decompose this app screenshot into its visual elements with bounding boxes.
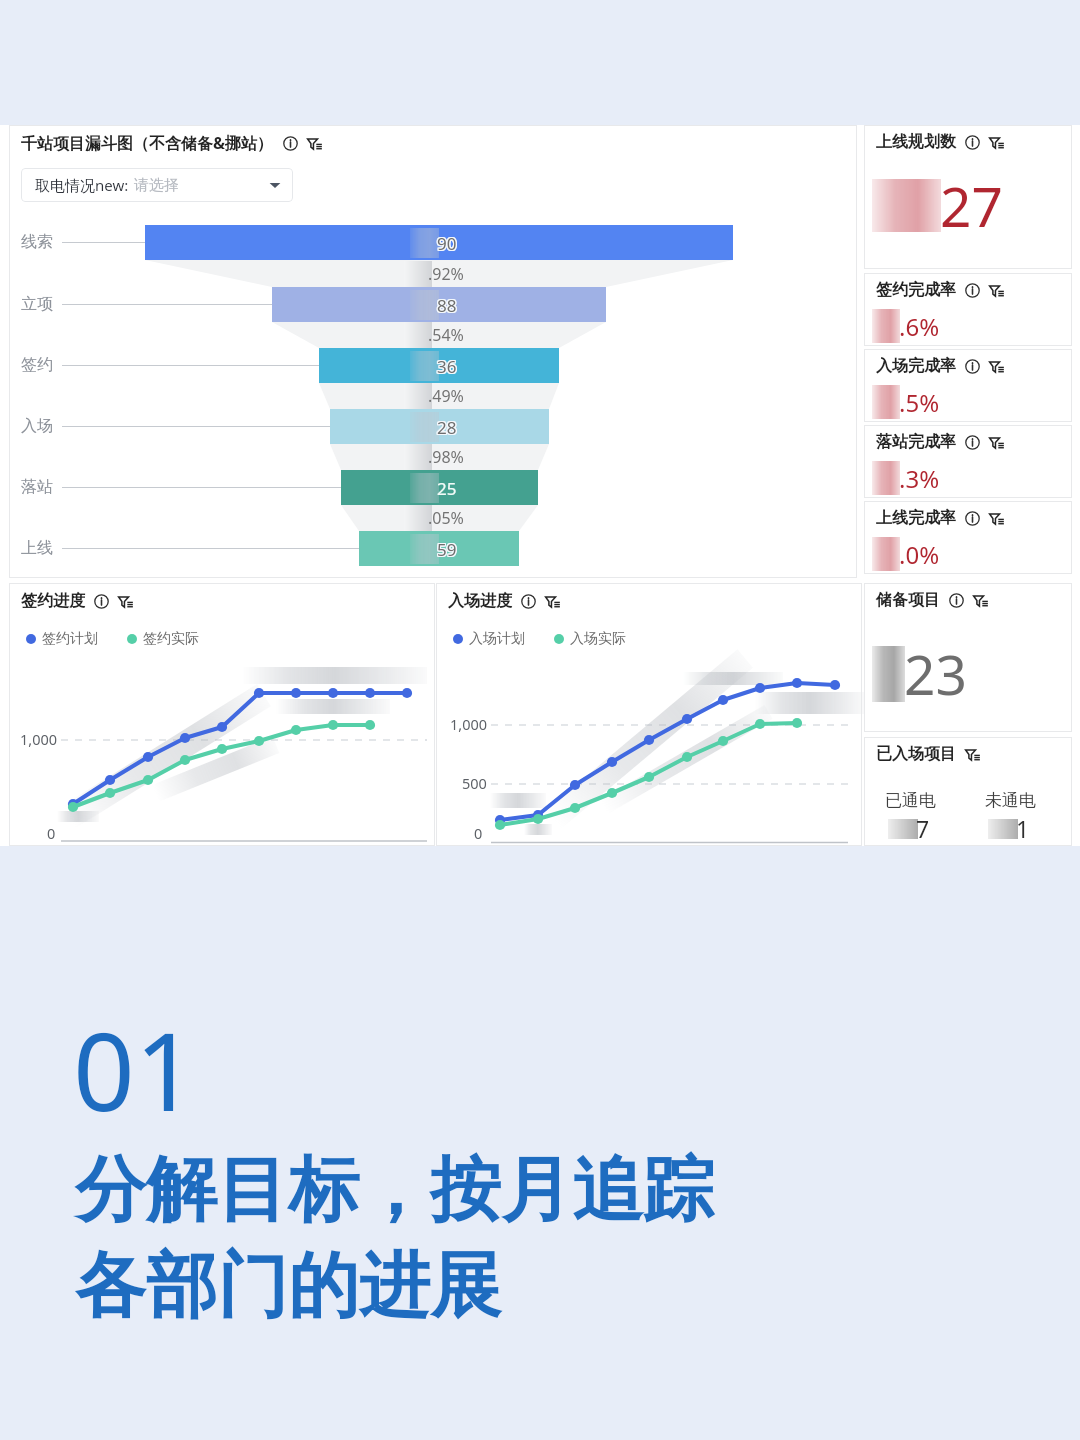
button[interactable]: Filter [118,594,133,609]
staticText: 36 [437,354,457,377]
button[interactable]: Filter [989,283,1004,298]
button[interactable]: Filter [989,135,1004,150]
staticText: 0 [47,823,56,843]
staticText: 28 [437,415,457,438]
staticText: 59 [438,539,458,562]
staticText: 90 [437,231,457,254]
staticText: 分解目标，按月追踪 [75,1146,714,1235]
staticText: 36 [438,354,458,377]
button[interactable]: Info [965,511,980,526]
staticText: 36 [437,356,457,379]
button[interactable]: Info [965,435,980,450]
staticText: 36 [438,355,458,378]
staticText: 签约进度 [21,591,85,611]
staticText: 59 [438,537,458,560]
staticText: .92% [428,263,464,285]
staticText: 88 [437,295,457,318]
button[interactable]: 储备项目 [864,583,1072,732]
staticText: 59 [437,539,457,562]
button[interactable]: 入场完成率 [864,349,1072,422]
staticText: 各部门的进展 [75,1242,501,1331]
button[interactable]: 签约进度 [9,583,435,846]
staticText: 落站完成率 [876,432,956,452]
staticText: .6% [899,310,940,343]
staticText: 59 [438,538,458,561]
staticText: .5% [899,386,940,419]
button[interactable]: 落站完成率 [864,425,1072,498]
staticText: 1,000 [20,729,58,749]
staticText: 未通电 [985,790,1036,811]
staticText: 27 [940,168,1003,243]
staticText: 入场计划 [469,630,525,648]
staticText: 59 [436,537,456,560]
button[interactable]: 上线完成率 [864,501,1072,574]
staticText: 88 [436,293,456,316]
staticText: .54% [428,324,464,346]
staticText: 59 [436,538,456,561]
button[interactable]: Info [965,135,980,150]
button[interactable]: Info [94,594,109,609]
button[interactable]: 入场进度 [436,583,862,846]
button[interactable]: Filter [307,136,322,151]
staticText: 28 [436,417,456,440]
staticText: 90 [436,233,456,256]
button[interactable]: Info [965,359,980,374]
button[interactable]: Filter [965,747,980,762]
staticText: 36 [438,356,458,379]
staticText: 线索 [21,232,53,252]
button[interactable]: 取电情况new: [21,168,293,202]
staticText: 25 [437,477,457,500]
staticText: 取电情况new: [35,175,129,195]
staticText: 36 [436,355,456,378]
staticText: 签约 [21,355,53,375]
button[interactable]: 已入场项目 [864,737,1072,846]
button[interactable]: Info [521,594,536,609]
staticText: 59 [436,539,456,562]
button[interactable]: 签约完成率 [864,273,1072,346]
staticText: 90 [436,232,456,255]
button[interactable]: Filter [989,435,1004,450]
staticText: 落站 [21,477,53,497]
button[interactable]: Info [949,593,964,608]
staticText: 90 [437,233,457,256]
staticText: 90 [438,231,458,254]
staticText: 储备项目 [876,590,940,610]
staticText: 88 [436,294,456,317]
button[interactable]: Filter [973,593,988,608]
staticText: 36 [436,354,456,377]
staticText: 0 [474,823,483,843]
staticText: 已通电 [885,790,936,811]
staticText: 入场 [21,416,53,436]
button[interactable]: Info [965,283,980,298]
staticText: 28 [438,415,458,438]
staticText: 上线完成率 [876,508,956,528]
staticText: 23 [904,636,967,711]
staticText: 88 [438,293,458,316]
staticText: .49% [428,385,464,407]
staticText: 59 [437,538,457,561]
staticText: 入场进度 [448,591,512,611]
button[interactable]: Filter [989,511,1004,526]
staticText: 90 [437,232,457,255]
staticText: 签约实际 [143,630,199,648]
button[interactable]: 千站项目漏斗图（不含储备&挪站） [9,125,857,578]
staticText: 1 [1016,813,1030,844]
staticText: 88 [437,294,457,317]
staticText: 01 [73,996,197,1143]
staticText: 88 [438,295,458,318]
button[interactable]: Info [283,136,298,151]
staticText: 500 [462,773,487,793]
button[interactable]: Filter [989,359,1004,374]
staticText: 36 [436,356,456,379]
staticText: 90 [438,233,458,256]
staticText: .3% [899,462,940,495]
staticText: 59 [437,537,457,560]
staticText: 请选择 [134,176,179,195]
staticText: 签约完成率 [876,280,956,300]
button[interactable]: 上线规划数 [864,125,1072,269]
button[interactable]: Filter [545,594,560,609]
staticText: 88 [437,293,457,316]
staticText: 36 [437,355,457,378]
staticText: 1,000 [450,714,488,734]
staticText: 88 [438,294,458,317]
